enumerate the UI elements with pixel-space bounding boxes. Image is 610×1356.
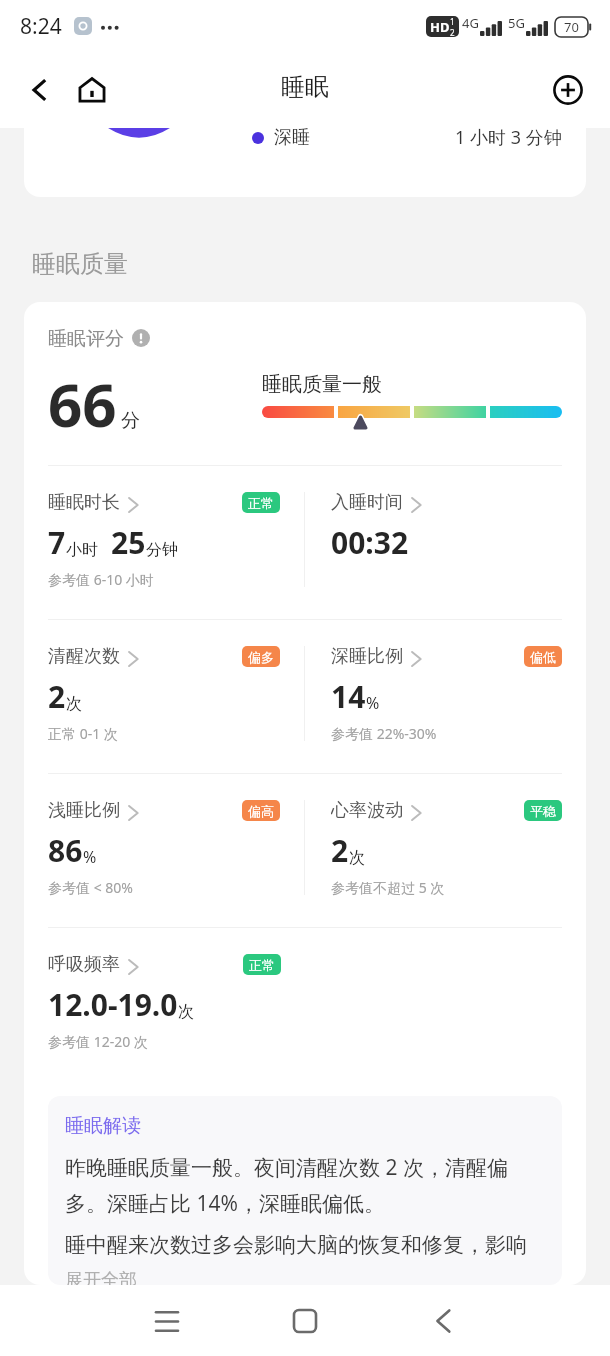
staticText: 平稳 xyxy=(530,803,556,819)
staticText: 偏高 xyxy=(248,803,274,819)
button[interactable]: Home xyxy=(274,1290,336,1352)
staticText: 睡眠解读 xyxy=(65,1114,141,1138)
button[interactable]: 呼吸频率 xyxy=(48,928,305,1051)
staticText: 2 xyxy=(450,27,455,37)
staticText: HD xyxy=(430,18,450,36)
button[interactable]: 清醒次数 xyxy=(48,620,304,743)
staticText: 8:24 xyxy=(20,12,62,41)
staticText: 正常 0-1 次 xyxy=(48,724,118,743)
staticText: 次 xyxy=(178,1002,194,1022)
staticText: 深睡比例 xyxy=(331,645,403,667)
button[interactable]: 入睡时间 xyxy=(331,466,562,563)
staticText: 深睡 xyxy=(274,128,310,149)
staticText: 清醒次数 xyxy=(48,645,120,667)
staticText: 呼吸频率 xyxy=(48,953,120,975)
staticText: 参考值 < 80% xyxy=(48,878,133,897)
button[interactable]: 睡眠时长 xyxy=(48,466,304,589)
staticText: 2 xyxy=(331,830,349,871)
staticText: 小时 xyxy=(66,540,98,560)
button[interactable]: Back xyxy=(412,1290,474,1352)
staticText: 正常 xyxy=(249,957,275,973)
button[interactable]: Recent apps xyxy=(136,1290,198,1352)
staticText: % xyxy=(83,846,97,868)
staticText: 睡眠时长 xyxy=(48,491,120,513)
staticText: 浅睡比例 xyxy=(48,799,120,821)
staticText: 2 xyxy=(48,676,66,717)
staticText: 次 xyxy=(349,848,365,868)
staticText: 12.0-19.0 xyxy=(48,984,178,1025)
staticText: 00:32 xyxy=(331,522,409,563)
staticText: 14 xyxy=(331,676,366,717)
staticText: 1 小时 3 分钟 xyxy=(455,128,562,150)
staticText: 心率波动 xyxy=(331,799,403,821)
staticText: 1 xyxy=(450,16,455,27)
staticText: 睡眠质量 xyxy=(32,249,128,279)
staticText: 25 xyxy=(111,522,146,563)
staticText: % xyxy=(366,692,380,714)
staticText: 86 xyxy=(48,830,83,871)
staticText: 睡眠评分 xyxy=(48,327,124,349)
staticText: 睡眠质量一般 xyxy=(262,372,382,397)
staticText: 睡眠 xyxy=(281,72,329,102)
button[interactable]: 深睡比例 xyxy=(331,620,562,743)
button[interactable]: Info xyxy=(132,329,150,347)
button[interactable]: Add xyxy=(548,70,588,110)
button[interactable]: 展开全部 xyxy=(65,1269,137,1285)
staticText: 睡中醒来次数过多会影响大脑的恢复和修复，影响 xyxy=(65,1232,527,1258)
staticText: 66 xyxy=(48,363,117,445)
button[interactable]: Back xyxy=(22,72,58,108)
button[interactable]: Home xyxy=(74,72,110,108)
staticText: 入睡时间 xyxy=(331,491,403,513)
staticText: 参考值 22%-30% xyxy=(331,724,437,743)
button[interactable]: 心率波动 xyxy=(331,774,562,897)
staticText: 分钟 xyxy=(146,540,178,560)
staticText: 多。深睡占比 14%，深睡眠偏低。 xyxy=(65,1189,385,1218)
staticText: 4G xyxy=(462,14,479,32)
staticText: 参考值 12-20 次 xyxy=(48,1032,148,1051)
staticText: 7 xyxy=(48,522,66,563)
staticText: 次 xyxy=(66,694,82,714)
staticText: 参考值 6-10 小时 xyxy=(48,570,154,589)
staticText: 5G xyxy=(508,14,525,32)
staticText: 分 xyxy=(121,409,140,433)
staticText: 偏多 xyxy=(248,649,274,665)
staticText: 正常 xyxy=(248,495,274,511)
staticText: 昨晚睡眠质量一般。夜间清醒次数 2 次，清醒偏 xyxy=(65,1153,508,1182)
staticText: 70 xyxy=(564,18,579,36)
staticText: 参考值不超过 5 次 xyxy=(331,878,445,897)
button[interactable]: 浅睡比例 xyxy=(48,774,304,897)
staticText: 偏低 xyxy=(530,649,556,665)
